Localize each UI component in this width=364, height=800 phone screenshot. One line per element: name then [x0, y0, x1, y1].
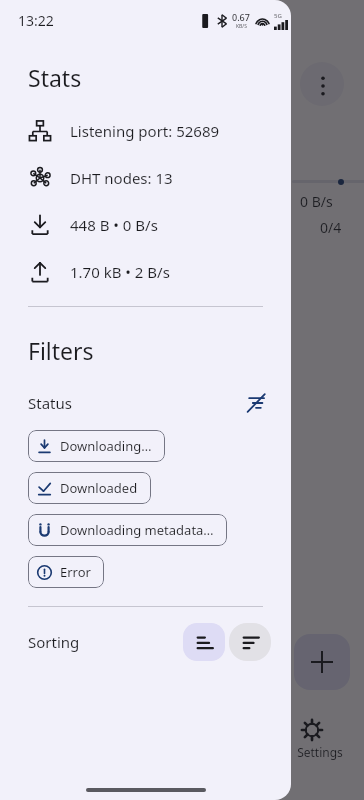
button[interactable]: Settings	[280, 712, 360, 772]
button[interactable]: Downloading metadata…	[28, 514, 227, 546]
button[interactable]: Downloaded	[28, 472, 151, 504]
staticText: Settings	[284, 744, 356, 760]
staticText: 1.70 kB • 2 B/s	[70, 262, 170, 282]
staticText: 0 B/s	[300, 192, 333, 211]
staticText: Sorting	[28, 632, 80, 652]
staticText: 0.67	[232, 11, 250, 23]
staticText: Downloading…	[60, 437, 152, 455]
staticText: Stats	[28, 62, 82, 93]
staticText: Error	[60, 563, 91, 581]
staticText: Downloaded	[60, 479, 138, 497]
staticText: 13:22	[18, 11, 54, 30]
staticText: DHT nodes: 13	[70, 168, 173, 188]
staticText: Downloading metadata…	[60, 521, 214, 539]
staticText: 0/4	[320, 218, 342, 237]
staticText: KB/S	[236, 23, 247, 30]
staticText: Filters	[28, 335, 94, 366]
button[interactable]: Error	[28, 556, 104, 588]
button[interactable]: Sort ascending	[183, 623, 225, 661]
button[interactable]: More options	[300, 62, 344, 106]
staticText: 5G	[274, 12, 282, 20]
staticText: Status	[28, 393, 72, 413]
staticText: Listening port: 52689	[70, 121, 220, 141]
button[interactable]: Add torrent	[294, 634, 350, 690]
staticText: 448 B • 0 B/s	[70, 215, 158, 235]
button[interactable]: Downloading…	[28, 430, 165, 462]
button[interactable]: Sort descending	[229, 623, 271, 661]
button[interactable]: Clear status filter	[243, 390, 269, 416]
